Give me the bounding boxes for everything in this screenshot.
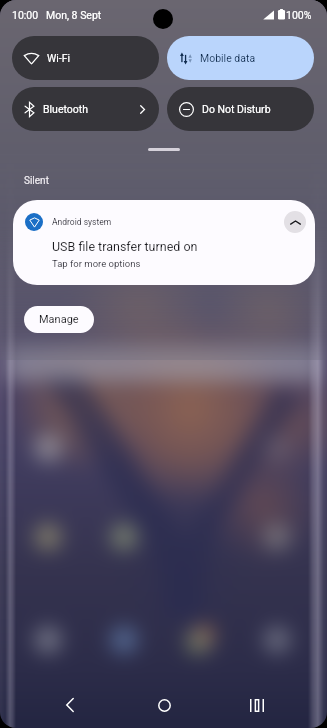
button[interactable]: Do Not Disturb	[167, 87, 314, 131]
staticText: Mon, 8 Sept	[46, 9, 102, 21]
staticText: Android system	[52, 217, 112, 227]
staticText: Do Not Disturb	[202, 103, 271, 115]
staticText: Tap for more options	[52, 258, 141, 269]
staticText: Bluetooth	[43, 103, 88, 115]
button[interactable]: Bluetooth	[12, 87, 159, 131]
staticText: USB file transfer turned on	[52, 239, 198, 254]
button[interactable]: Back	[47, 682, 93, 728]
staticText: Wi-Fi	[47, 52, 71, 64]
staticText: Manage	[39, 313, 79, 326]
button[interactable]: Manage	[24, 306, 94, 333]
button[interactable]: Wi-Fi	[12, 36, 159, 80]
staticText: Silent	[24, 175, 49, 187]
staticText: 10:00	[12, 9, 39, 21]
staticText: 100%	[286, 9, 312, 21]
button[interactable]: Home	[141, 682, 187, 728]
button[interactable]: Collapse	[284, 211, 306, 233]
button[interactable]: Android system	[13, 200, 315, 285]
button[interactable]: Recents	[234, 682, 280, 728]
staticText: Mobile data	[200, 52, 256, 64]
button[interactable]: Mobile data	[167, 36, 314, 80]
